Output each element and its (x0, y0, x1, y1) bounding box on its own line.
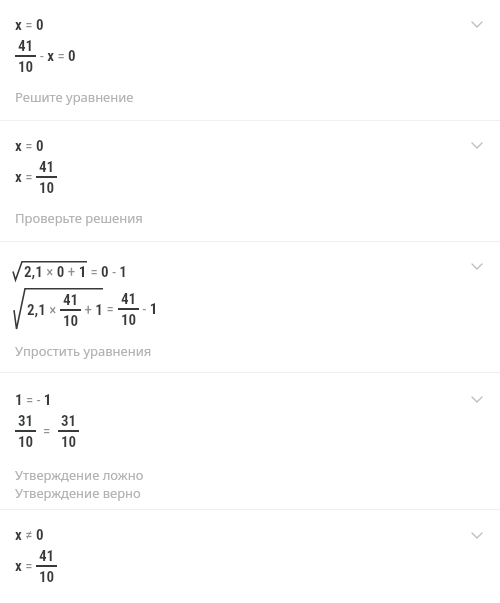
button[interactable]: 2,1 × 0 + 1 (0, 242, 500, 372)
button[interactable]: x = 0 (0, 121, 500, 241)
staticText: x ≠ 0 (15, 526, 44, 544)
staticText: = (103, 300, 118, 318)
staticText: 10 (18, 433, 34, 451)
staticText: 41 (18, 37, 34, 55)
staticText: 31 (18, 412, 34, 430)
staticText: - x = 0 (40, 47, 76, 65)
staticText: 2,1 × 0 + 1 (24, 263, 87, 281)
button[interactable]: Expand step (465, 523, 489, 547)
staticText: Утверждение ложно (15, 466, 144, 484)
staticText: Упростить уравнения (15, 342, 152, 360)
staticText: 10 (63, 312, 79, 330)
staticText: 41 (121, 290, 137, 308)
staticText: Решите уравнение (15, 88, 134, 106)
staticText: x = 0 (15, 16, 44, 34)
staticText: 41 (39, 158, 55, 176)
staticText: 1 = - 1 (15, 391, 52, 409)
staticText: - 1 (139, 300, 158, 318)
staticText: 10 (18, 58, 34, 76)
staticText: x = (15, 557, 36, 575)
button[interactable]: x = 0 (0, 0, 500, 120)
staticText: 41 (63, 291, 79, 309)
button[interactable]: Expand step (465, 133, 489, 157)
staticText: = 0 - 1 (87, 263, 127, 281)
staticText: Утверждение верно (15, 484, 141, 502)
button[interactable]: Expand step (465, 12, 489, 36)
staticText: 41 (39, 547, 55, 565)
button[interactable]: x ≠ 0 (0, 510, 500, 603)
staticText: 10 (39, 568, 55, 586)
button[interactable]: Expand step (465, 387, 489, 411)
staticText: x = (15, 168, 36, 186)
staticText: Проверьте решения (15, 209, 143, 227)
button[interactable]: Expand step (465, 254, 489, 278)
staticText: 10 (121, 311, 137, 329)
staticText: 2,1 × (27, 301, 60, 319)
staticText: 31 (61, 412, 77, 430)
button[interactable]: 1 = - 1 (0, 373, 500, 509)
staticText: 10 (39, 179, 55, 197)
staticText: x = 0 (15, 137, 44, 155)
staticText: = (36, 422, 58, 440)
staticText: + 1 (81, 301, 103, 319)
staticText: 10 (61, 433, 77, 451)
